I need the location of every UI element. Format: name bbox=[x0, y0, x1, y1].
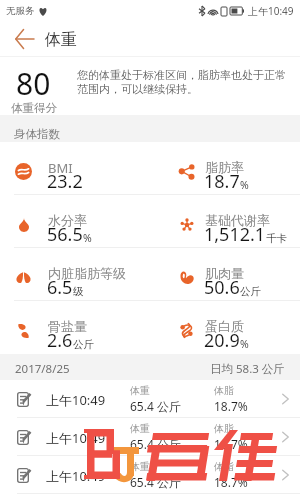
staticText: 骨盐量 bbox=[48, 318, 87, 334]
button[interactable]: 脂肪率 bbox=[163, 142, 300, 195]
staticText: % bbox=[240, 178, 249, 192]
staticText: 无服务 bbox=[6, 5, 35, 17]
staticText: 50.6 bbox=[204, 275, 240, 300]
staticText: 23.2 bbox=[47, 169, 83, 194]
staticText: 56.5 bbox=[47, 222, 83, 247]
staticText: 肌肉量 bbox=[205, 265, 244, 281]
staticText: 体重得分 bbox=[11, 101, 57, 115]
staticText: 脂肪率 bbox=[205, 159, 244, 175]
button[interactable]: 上午10:49 bbox=[0, 456, 300, 494]
staticText: 65.4 公斤 bbox=[130, 436, 181, 452]
staticText: 体重 bbox=[130, 460, 150, 473]
button[interactable]: 水分率 bbox=[0, 195, 163, 248]
staticText: 体脂 bbox=[214, 422, 234, 435]
staticText: 体脂 bbox=[214, 460, 234, 473]
button[interactable]: 肌肉量 bbox=[163, 248, 300, 301]
staticText: % bbox=[240, 337, 249, 351]
staticText: 上午10:49 bbox=[46, 429, 106, 447]
staticText: 上午10:49 bbox=[46, 391, 106, 409]
staticText: 体重 bbox=[45, 30, 77, 50]
button[interactable]: 基础代谢率 bbox=[163, 195, 300, 248]
staticText: 您的体重处于标准区间，脂肪率也处于正常范围内，可以继续保持。 bbox=[77, 68, 288, 96]
staticText: 80 bbox=[16, 63, 51, 104]
button[interactable]: 骨盐量 bbox=[0, 301, 163, 354]
staticText: 千卡 bbox=[266, 232, 287, 245]
button[interactable]: 蛋白质 bbox=[163, 301, 300, 354]
staticText: 日均 58.3 公斤 bbox=[210, 361, 285, 377]
staticText: 上午10:49 bbox=[46, 467, 106, 485]
staticText: 2.6 bbox=[47, 328, 73, 353]
staticText: 级 bbox=[73, 285, 84, 298]
staticText: 65.4 公斤 bbox=[130, 474, 181, 490]
staticText: 20.9 bbox=[204, 328, 240, 353]
staticText: 18.7% bbox=[214, 398, 248, 414]
button[interactable]: BMI bbox=[0, 142, 163, 195]
staticText: % bbox=[83, 231, 92, 245]
staticText: 65.4 公斤 bbox=[130, 398, 181, 414]
staticText: 蛋白质 bbox=[205, 318, 244, 334]
staticText: BMI bbox=[48, 159, 73, 177]
button[interactable]: 内脏脂肪等级 bbox=[0, 248, 163, 301]
button[interactable]: Back bbox=[9, 21, 39, 57]
staticText: 1,512.1 bbox=[204, 222, 266, 247]
staticText: 2017/8/25 bbox=[15, 361, 70, 377]
staticText: 基础代谢率 bbox=[205, 212, 270, 228]
staticText: 6.5 bbox=[47, 275, 73, 300]
staticText: 水分率 bbox=[48, 212, 87, 228]
staticText: 18.7% bbox=[214, 474, 248, 490]
staticText: 18.7% bbox=[214, 436, 248, 452]
staticText: 身体指数 bbox=[14, 127, 60, 141]
staticText: 18.7 bbox=[204, 169, 240, 194]
staticText: 体重 bbox=[130, 384, 150, 397]
staticText: 上午10:49 bbox=[248, 4, 294, 18]
button[interactable]: 上午10:49 bbox=[0, 418, 300, 456]
staticText: 体脂 bbox=[214, 384, 234, 397]
staticText: 体重 bbox=[130, 422, 150, 435]
staticText: 公斤 bbox=[240, 285, 261, 298]
staticText: 内脏脂肪等级 bbox=[48, 265, 126, 281]
button[interactable]: 上午10:49 bbox=[0, 380, 300, 418]
staticText: 公斤 bbox=[73, 338, 94, 351]
